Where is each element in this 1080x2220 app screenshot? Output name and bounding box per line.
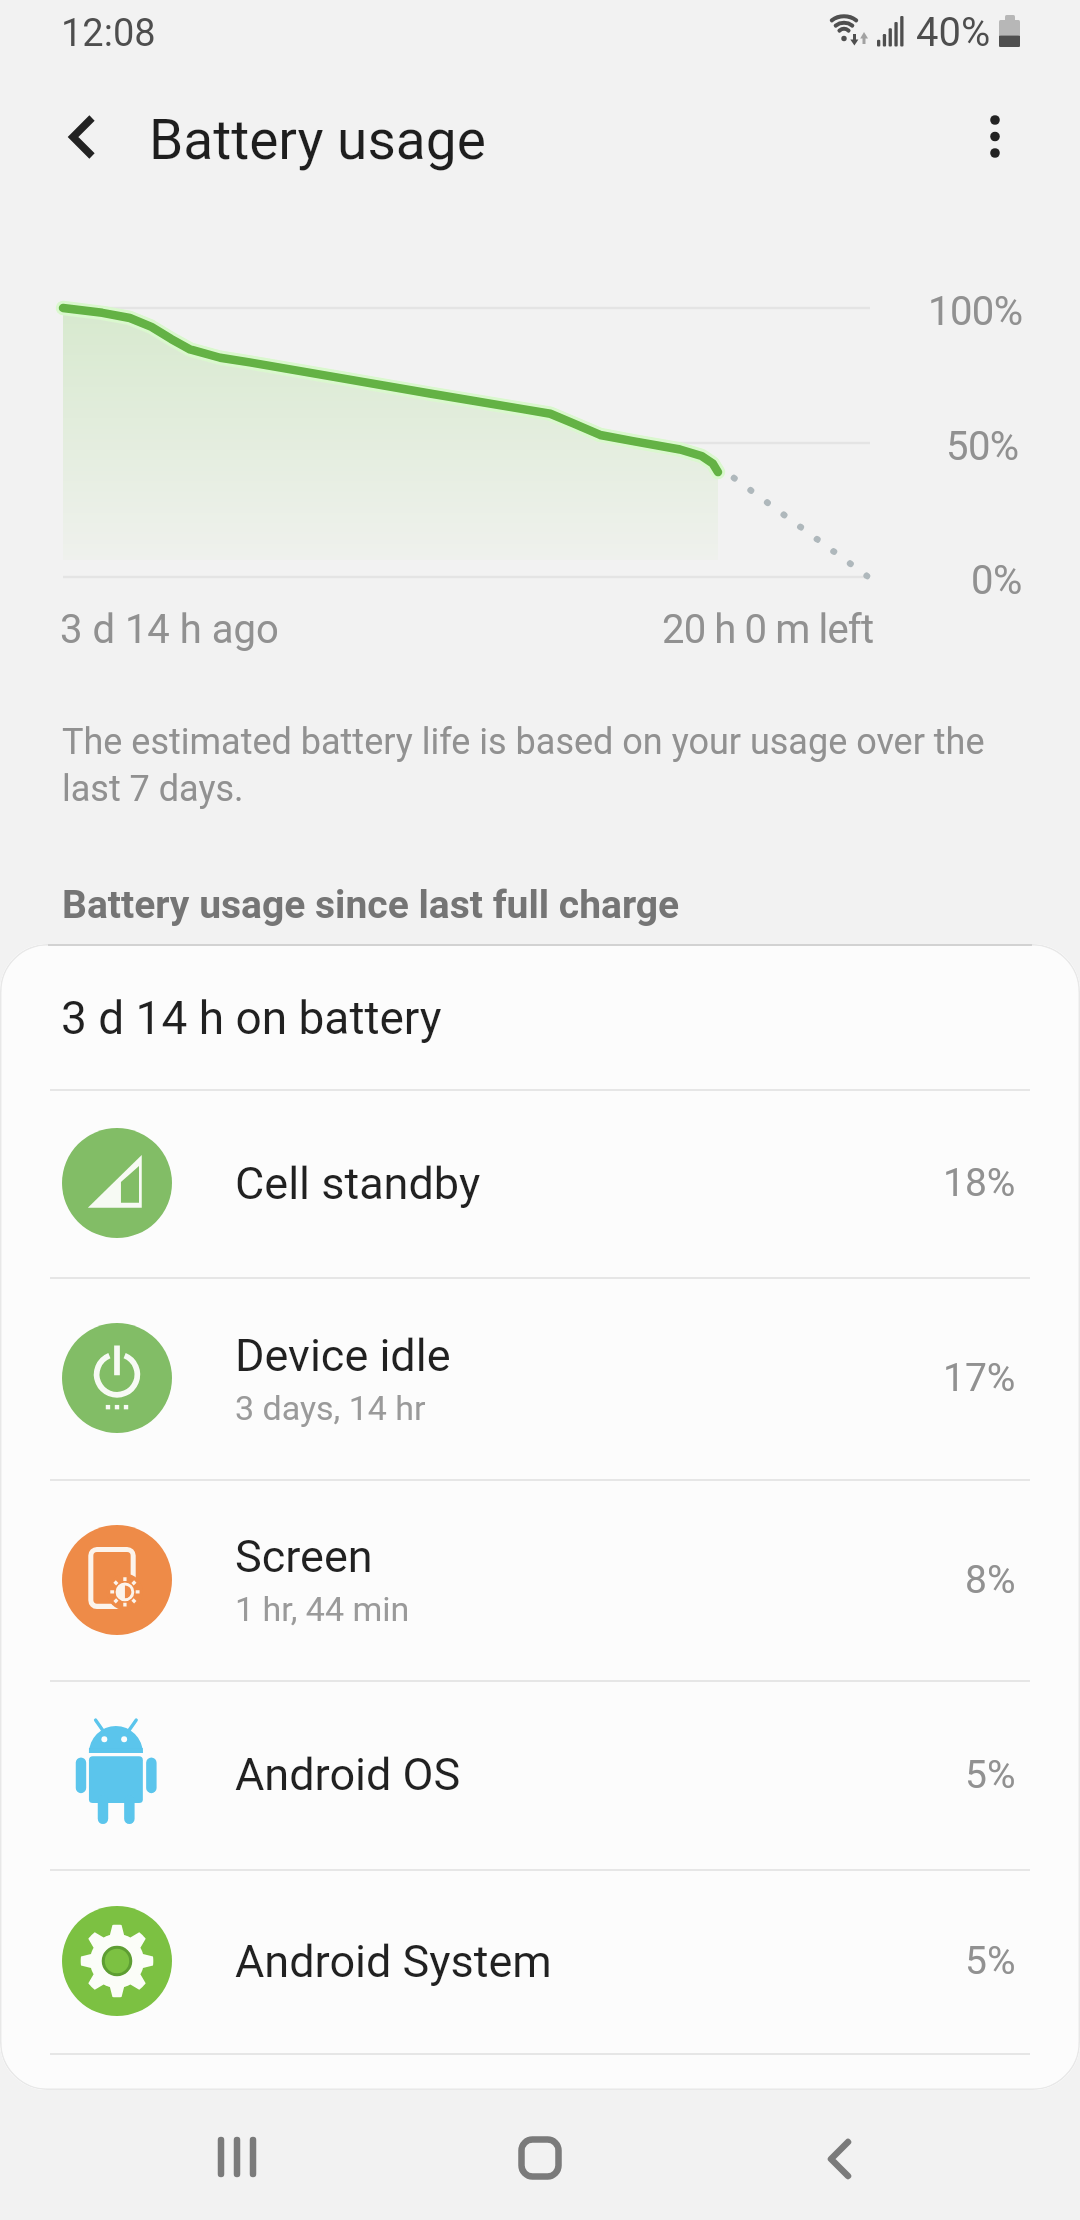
staticText: 3 days, 14 hr <box>235 1388 426 1428</box>
staticText: Android System <box>235 1935 552 1988</box>
staticText: Battery usage since last full charge <box>62 882 680 928</box>
staticText: Device idle <box>235 1329 451 1382</box>
staticText: Android OS <box>235 1748 461 1801</box>
staticText: 20 h 0 m left <box>662 606 874 653</box>
button[interactable]: Screen <box>0 1479 1080 1680</box>
button[interactable]: Android System <box>0 1869 1080 2053</box>
button[interactable]: More options <box>959 100 1031 172</box>
staticText: 8% <box>965 1557 1016 1603</box>
staticText: 5% <box>965 1938 1016 1984</box>
staticText: Cell standby <box>235 1157 481 1210</box>
staticText: 50% <box>946 423 1019 470</box>
staticText: 0% <box>971 557 1022 604</box>
button[interactable]: Device idle <box>0 1277 1080 1479</box>
staticText: 40% <box>916 9 991 56</box>
button[interactable]: Recents <box>182 2102 292 2212</box>
staticText: The estimated battery life is based on y… <box>62 721 985 810</box>
button[interactable]: Cell standby <box>0 1089 1080 1277</box>
staticText: 3 d 14 h ago <box>60 606 279 653</box>
button[interactable]: Android OS <box>0 1680 1080 1869</box>
staticText: Screen <box>235 1530 373 1583</box>
staticText: 100% <box>928 288 1023 335</box>
staticText: 3 d 14 h on battery <box>61 991 442 1045</box>
button[interactable]: Home <box>484 2102 594 2212</box>
button[interactable]: Back <box>786 2102 896 2212</box>
staticText: 18% <box>943 1160 1016 1206</box>
button[interactable]: Back <box>46 104 114 172</box>
staticText: 12:08 <box>61 11 156 56</box>
staticText: 17% <box>943 1355 1016 1401</box>
staticText: 5% <box>965 1752 1016 1798</box>
staticText: Battery usage <box>149 108 486 172</box>
staticText: 1 hr, 44 min <box>235 1589 410 1629</box>
